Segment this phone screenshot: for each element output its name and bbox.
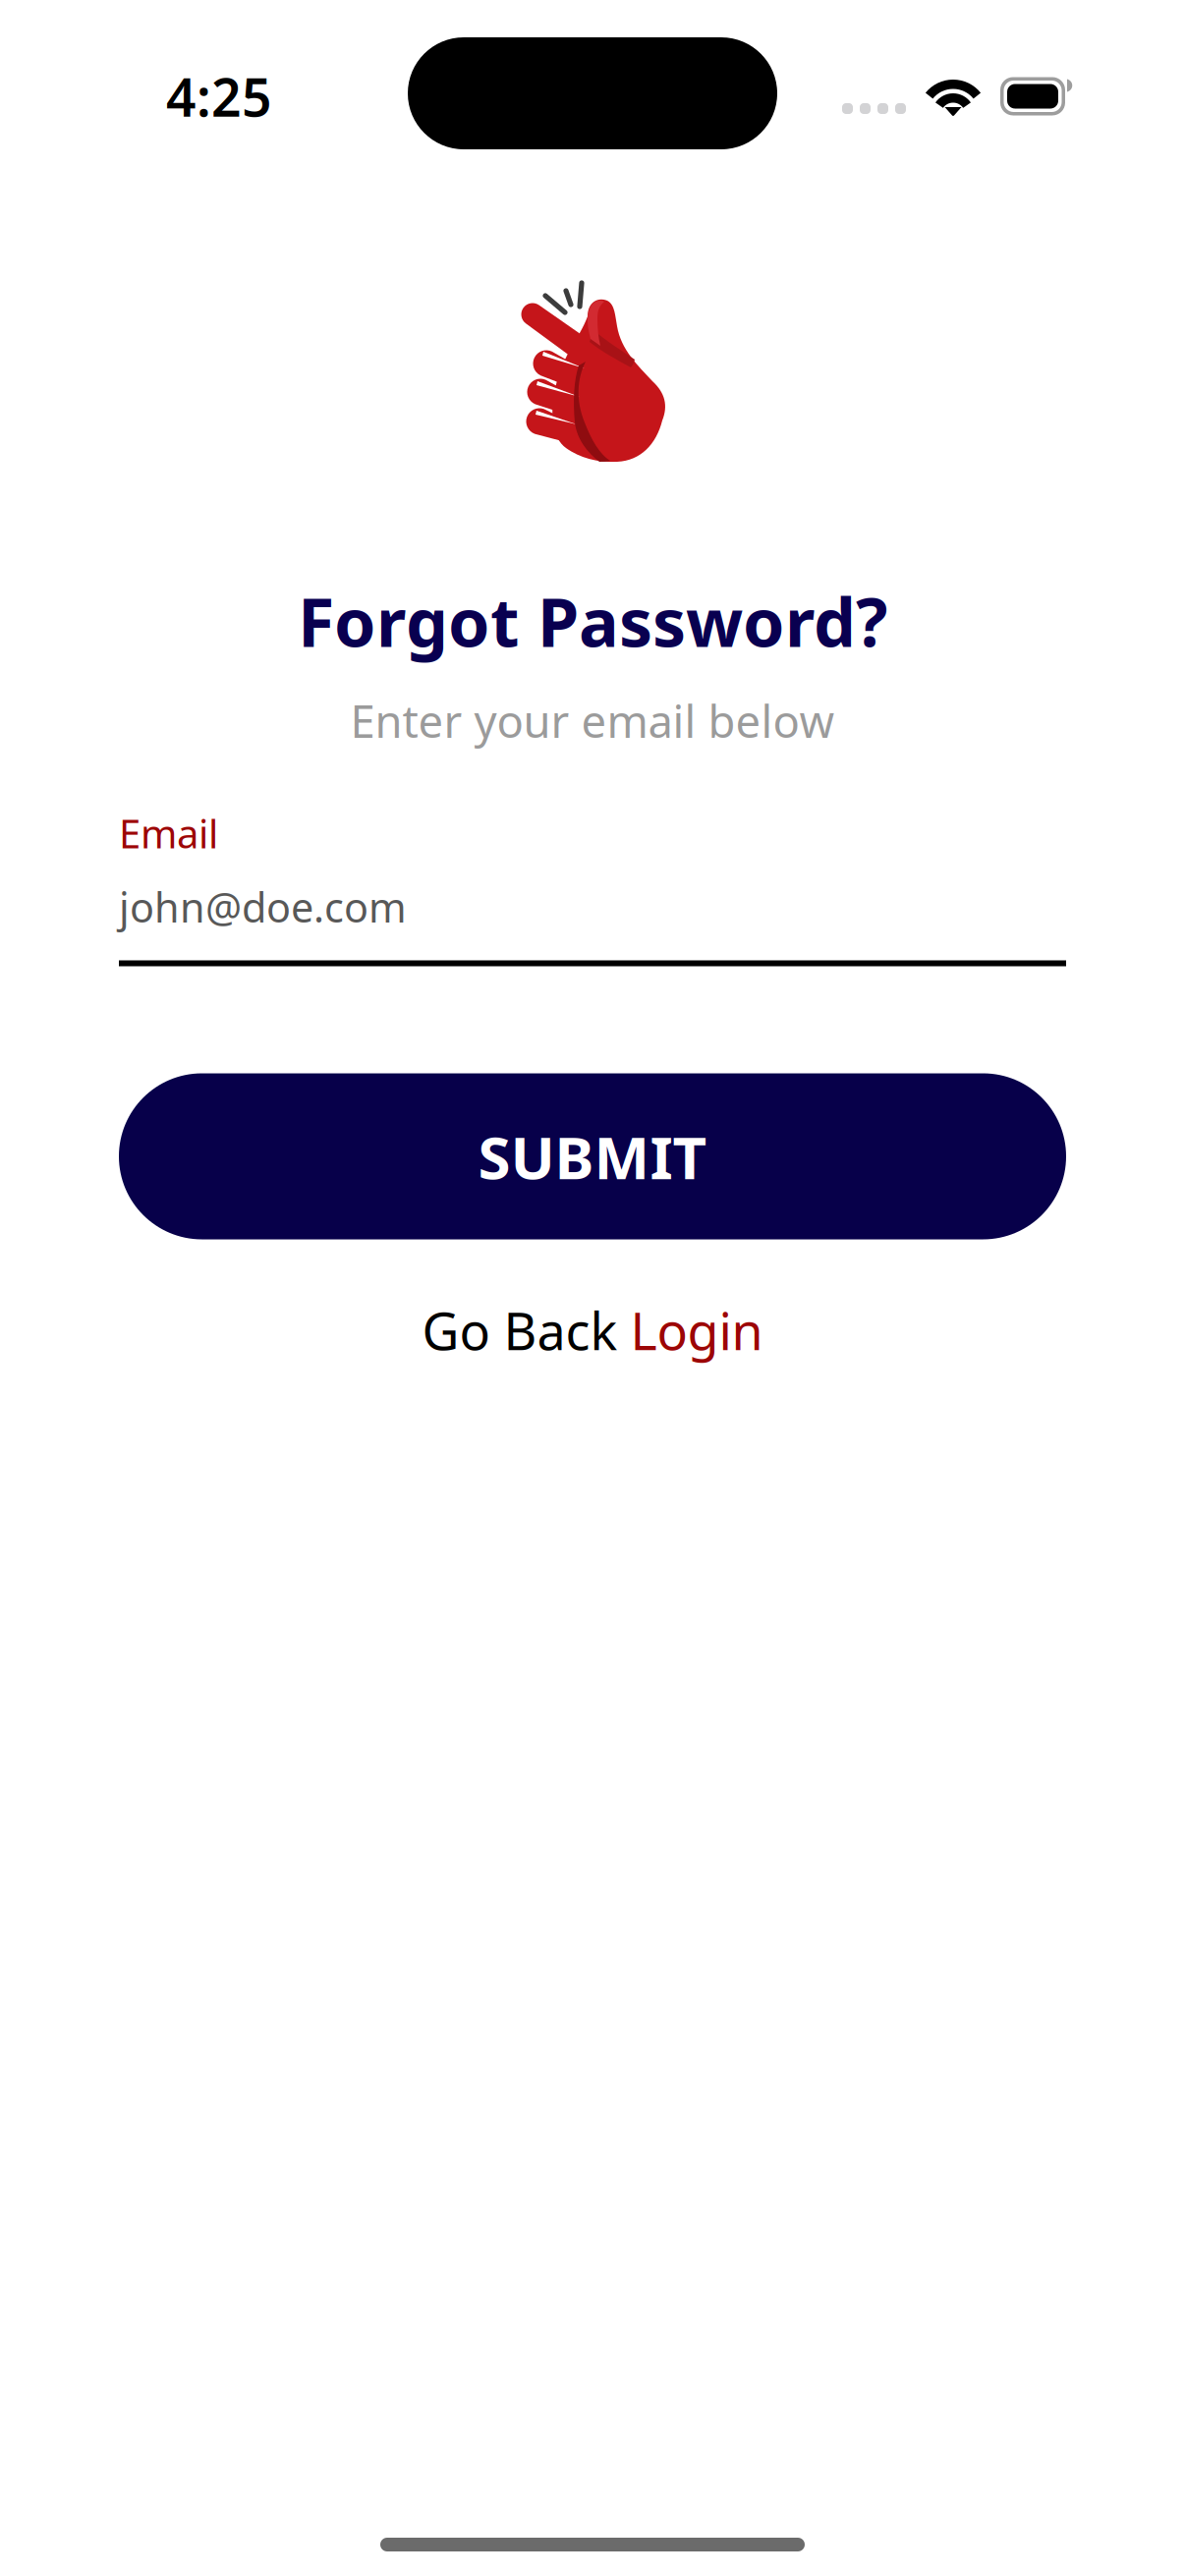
staticText: 4:25 — [166, 62, 272, 131]
staticText: Email — [119, 807, 218, 859]
button[interactable]: Email — [119, 807, 1066, 966]
staticText: SUBMIT — [478, 1117, 707, 1196]
staticText: Login — [630, 1296, 763, 1364]
staticText: john@doe.com — [119, 880, 407, 934]
button[interactable]: Login — [630, 1296, 763, 1364]
button[interactable]: SUBMIT — [119, 1073, 1066, 1239]
button[interactable]: Go Back — [422, 1296, 618, 1364]
staticText: Enter your email below — [350, 691, 835, 750]
staticText: Go Back — [422, 1296, 618, 1364]
staticText: Forgot Password? — [298, 577, 887, 665]
